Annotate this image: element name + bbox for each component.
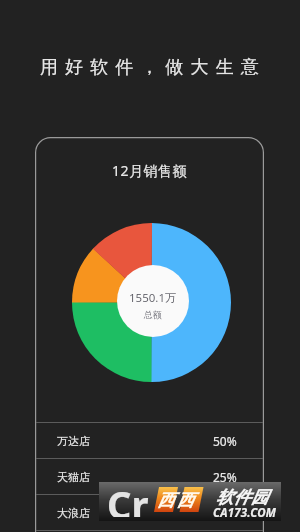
staticText: 万达店 [57,434,90,448]
button[interactable]: 万达店 [36,423,263,458]
staticText: 25% [213,469,237,485]
button[interactable]: 大浪店 [36,495,263,530]
staticText: 软件园 [216,487,269,508]
staticText: Cr [107,478,149,517]
staticText: 大浪店 [57,506,90,520]
staticText: 50% [213,433,237,449]
staticText: 1550.1万 [129,290,177,306]
staticText: 13% [213,505,237,521]
staticText: 西西 [156,490,195,511]
button[interactable]: 天猫店 [36,459,263,494]
staticText: 12月销售额 [112,161,188,180]
staticText: CA173.COM [213,505,277,521]
staticText: 总额 [144,309,162,320]
staticText: 用好软件，做大生意 [40,56,266,79]
staticText: 天猫店 [57,470,90,484]
